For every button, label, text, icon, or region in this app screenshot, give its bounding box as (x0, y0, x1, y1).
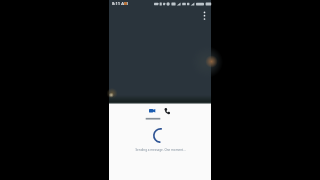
button[interactable]: More options (199, 7, 210, 18)
staticText: 8:11 AM (112, 1, 128, 7)
button[interactable]: Video call tab, selected (143, 105, 163, 122)
button[interactable]: Audio call tab (161, 106, 176, 120)
staticText: Sending a message. One moment... (135, 148, 186, 152)
